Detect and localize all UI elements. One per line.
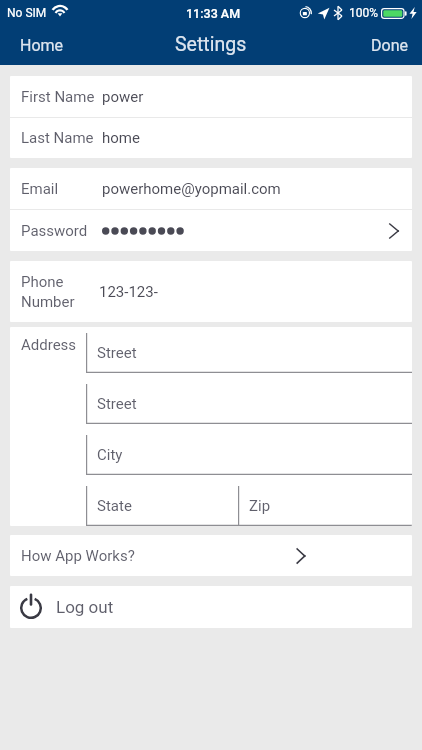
staticText: Settings [175, 33, 247, 56]
staticText: Password [21, 222, 88, 240]
button[interactable]: Zip [238, 486, 412, 526]
staticText: Address [21, 336, 77, 354]
staticText: 123-123- [99, 283, 158, 301]
button[interactable]: Street [86, 333, 412, 373]
button[interactable]: Home [0, 28, 78, 63]
staticText: How App Works? [21, 547, 135, 565]
staticText: Done [371, 36, 408, 55]
staticText: Home [20, 36, 64, 55]
button[interactable]: Done [357, 28, 422, 63]
button[interactable]: Log out [10, 586, 412, 628]
button[interactable]: State [86, 486, 238, 526]
staticText: Street [97, 344, 137, 362]
staticText: Log out [56, 597, 114, 617]
staticText: City [97, 446, 123, 464]
staticText: Email [21, 180, 59, 198]
other: Edit password [385, 221, 405, 241]
button[interactable]: Street [86, 384, 412, 424]
staticText: powerhome@yopmail.com [102, 180, 281, 198]
button[interactable]: How App Works? [10, 535, 412, 576]
staticText: Last Name [21, 129, 94, 147]
button[interactable]: Last Name [10, 118, 412, 158]
staticText: 11:33 AM [186, 6, 241, 21]
staticText: 100% [349, 6, 379, 20]
staticText: home [102, 129, 140, 147]
button[interactable]: City [86, 435, 412, 475]
button[interactable]: First Name [10, 76, 412, 117]
button[interactable]: Password [10, 210, 412, 251]
button[interactable]: Email [10, 168, 412, 209]
staticText: Number [21, 293, 75, 311]
staticText: Zip [249, 497, 271, 515]
staticText: No SIM [7, 6, 47, 20]
staticText: State [97, 497, 132, 515]
staticText: Street [97, 395, 137, 413]
staticText: Phone [21, 273, 64, 291]
button[interactable]: Phone [10, 261, 412, 322]
staticText: First Name [21, 88, 95, 106]
staticText: power [102, 88, 144, 106]
